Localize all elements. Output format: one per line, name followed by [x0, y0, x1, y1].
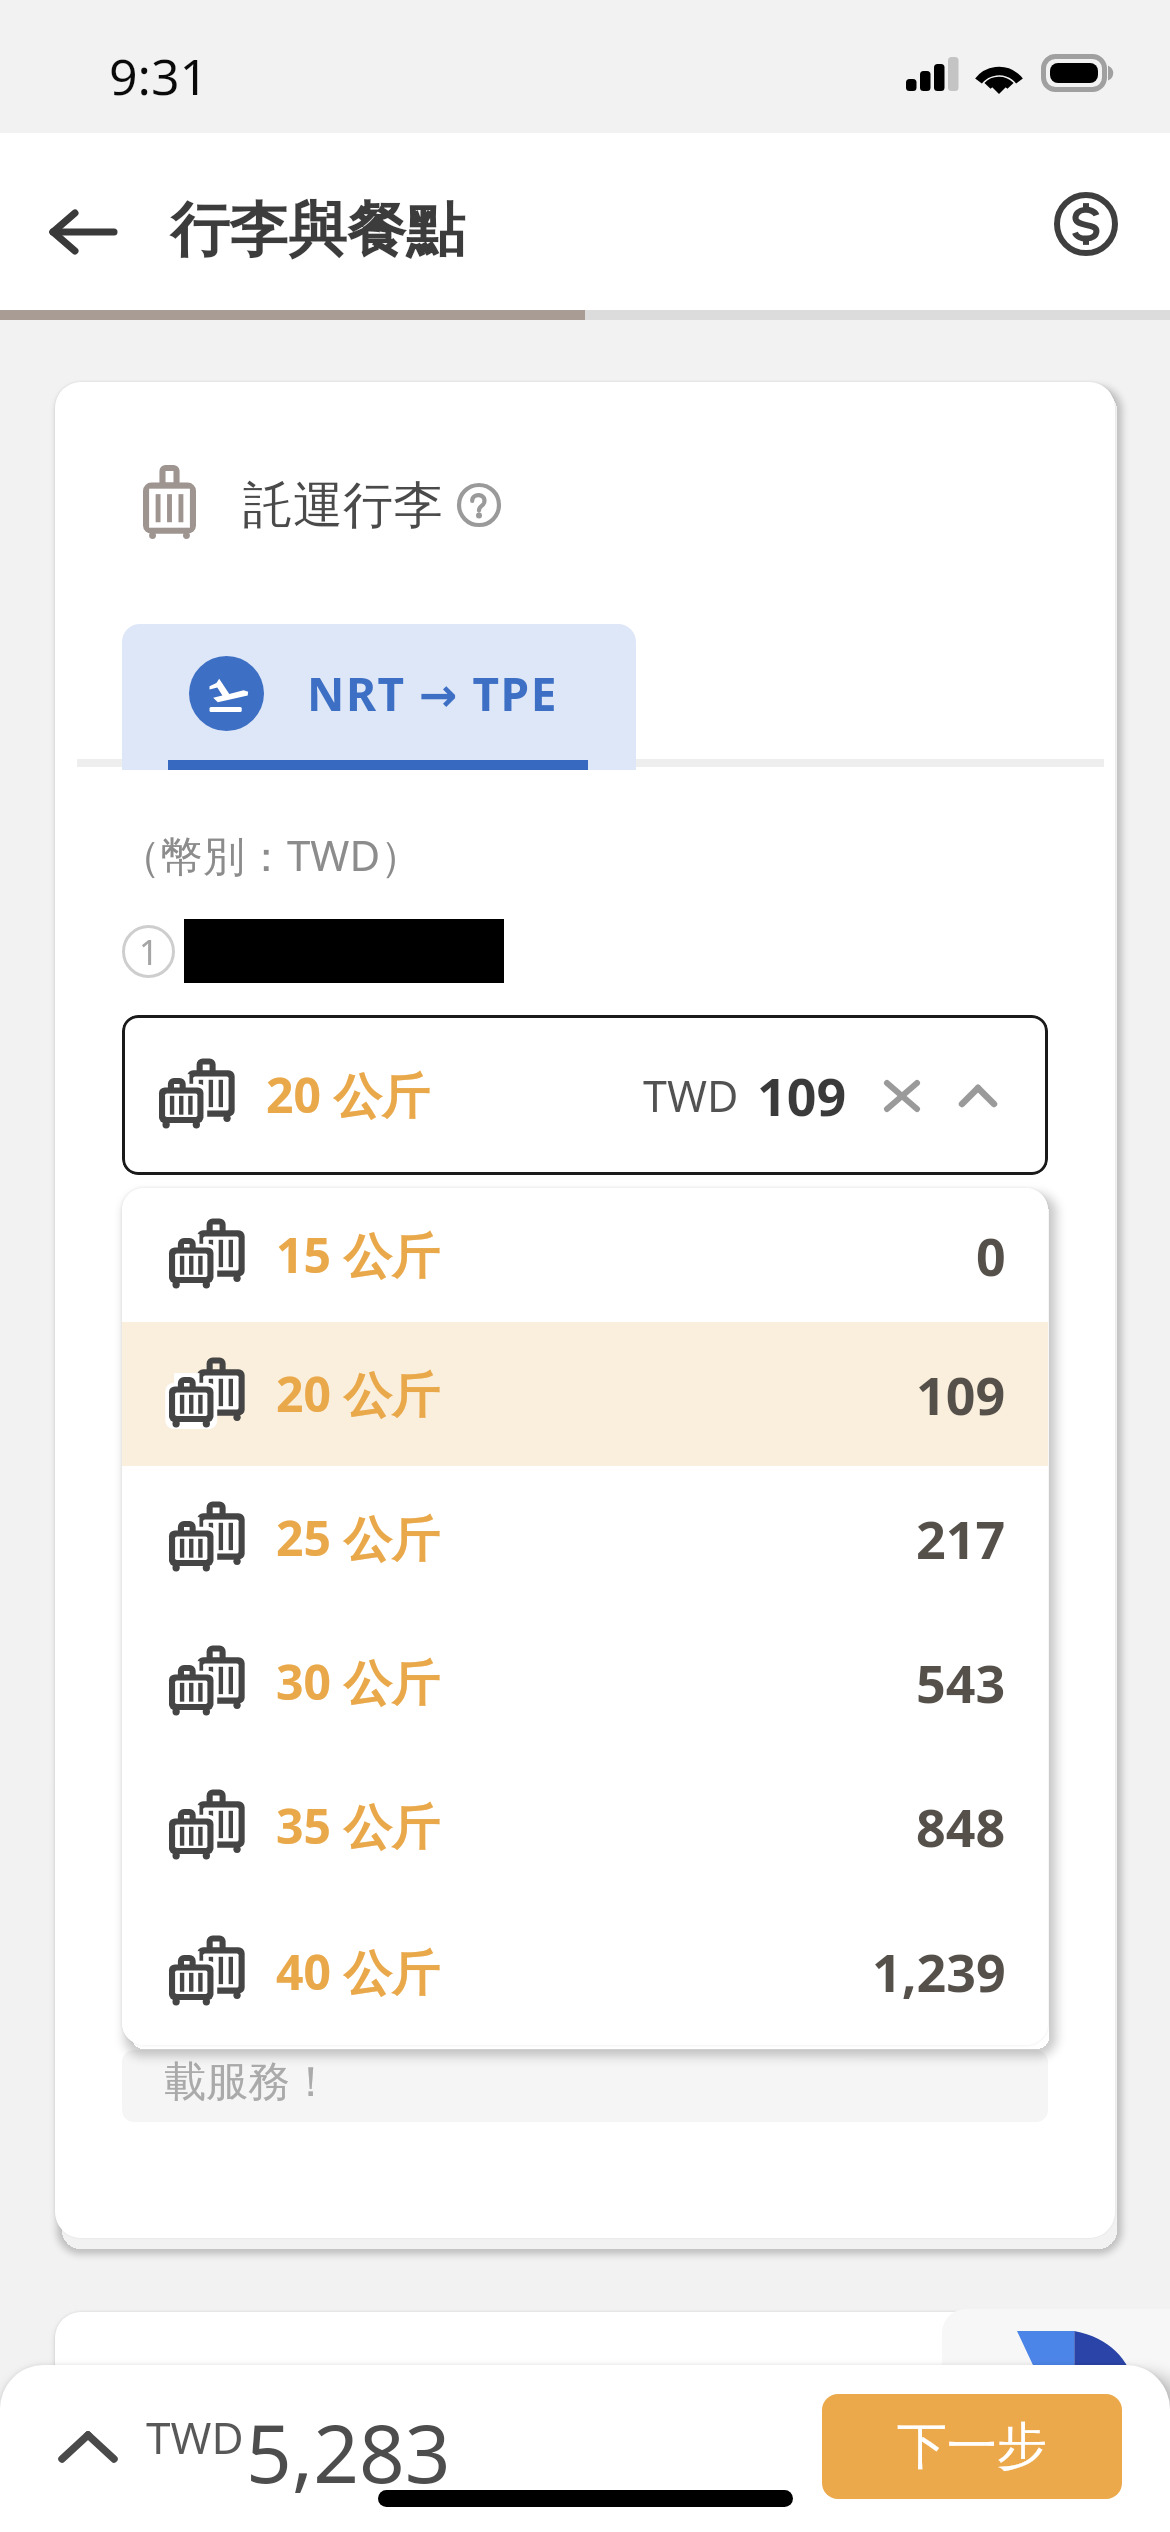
button[interactable]: Remove — [869, 1063, 935, 1129]
staticText: （幣別：TWD） — [119, 826, 423, 883]
staticText: 0 — [976, 1220, 1006, 1291]
button[interactable]: 20 公斤 — [122, 1322, 1048, 1466]
staticText: 1 — [139, 929, 159, 975]
staticText: 543 — [916, 1647, 1006, 1718]
staticText: 5,283 — [246, 2397, 451, 2506]
staticText: 109 — [916, 1359, 1006, 1430]
staticText: TWD — [146, 2407, 244, 2467]
staticText: TWD — [643, 1066, 739, 1125]
staticText: 載服務！ — [164, 2056, 332, 2109]
button[interactable]: NRT → TPE — [122, 624, 636, 770]
staticText: 848 — [916, 1791, 1006, 1862]
staticText: 15 公斤 — [276, 1222, 440, 1288]
staticText: 1,239 — [872, 1936, 1006, 2007]
staticText: 40 公斤 — [276, 1939, 440, 2005]
staticText: NRT → TPE — [307, 662, 558, 725]
button[interactable]: 30 公斤 — [122, 1610, 1048, 1754]
button[interactable]: 15 公斤 — [122, 1188, 1048, 1322]
button[interactable]: 25 公斤 — [122, 1466, 1048, 1610]
staticText: 行李與餐點 — [170, 193, 465, 267]
button[interactable]: 下一步 — [822, 2394, 1122, 2499]
staticText: 35 公斤 — [276, 1793, 440, 1859]
button[interactable]: 35 公斤 — [122, 1754, 1048, 1898]
staticText: 30 公斤 — [276, 1649, 440, 1715]
staticText: 109 — [757, 1060, 847, 1131]
button[interactable]: 20 公斤 — [122, 1015, 1048, 1175]
staticText: 下一步 — [897, 2415, 1047, 2478]
staticText: 20 公斤 — [276, 1361, 440, 1427]
button[interactable]: Expand price details — [50, 2409, 126, 2485]
staticText: 9:31 — [109, 42, 209, 110]
button[interactable]: Currency — [1031, 169, 1141, 279]
button[interactable]: Back — [28, 177, 138, 287]
staticText: 25 公斤 — [276, 1505, 440, 1571]
staticText: 20 公斤 — [266, 1062, 430, 1128]
staticText: 託運行李 — [243, 474, 443, 537]
button[interactable]: Collapse — [945, 1063, 1011, 1129]
button[interactable]: 40 公斤 — [122, 1898, 1048, 2045]
staticText: 217 — [916, 1503, 1006, 1574]
button[interactable]: Translate — [942, 2309, 1170, 2439]
